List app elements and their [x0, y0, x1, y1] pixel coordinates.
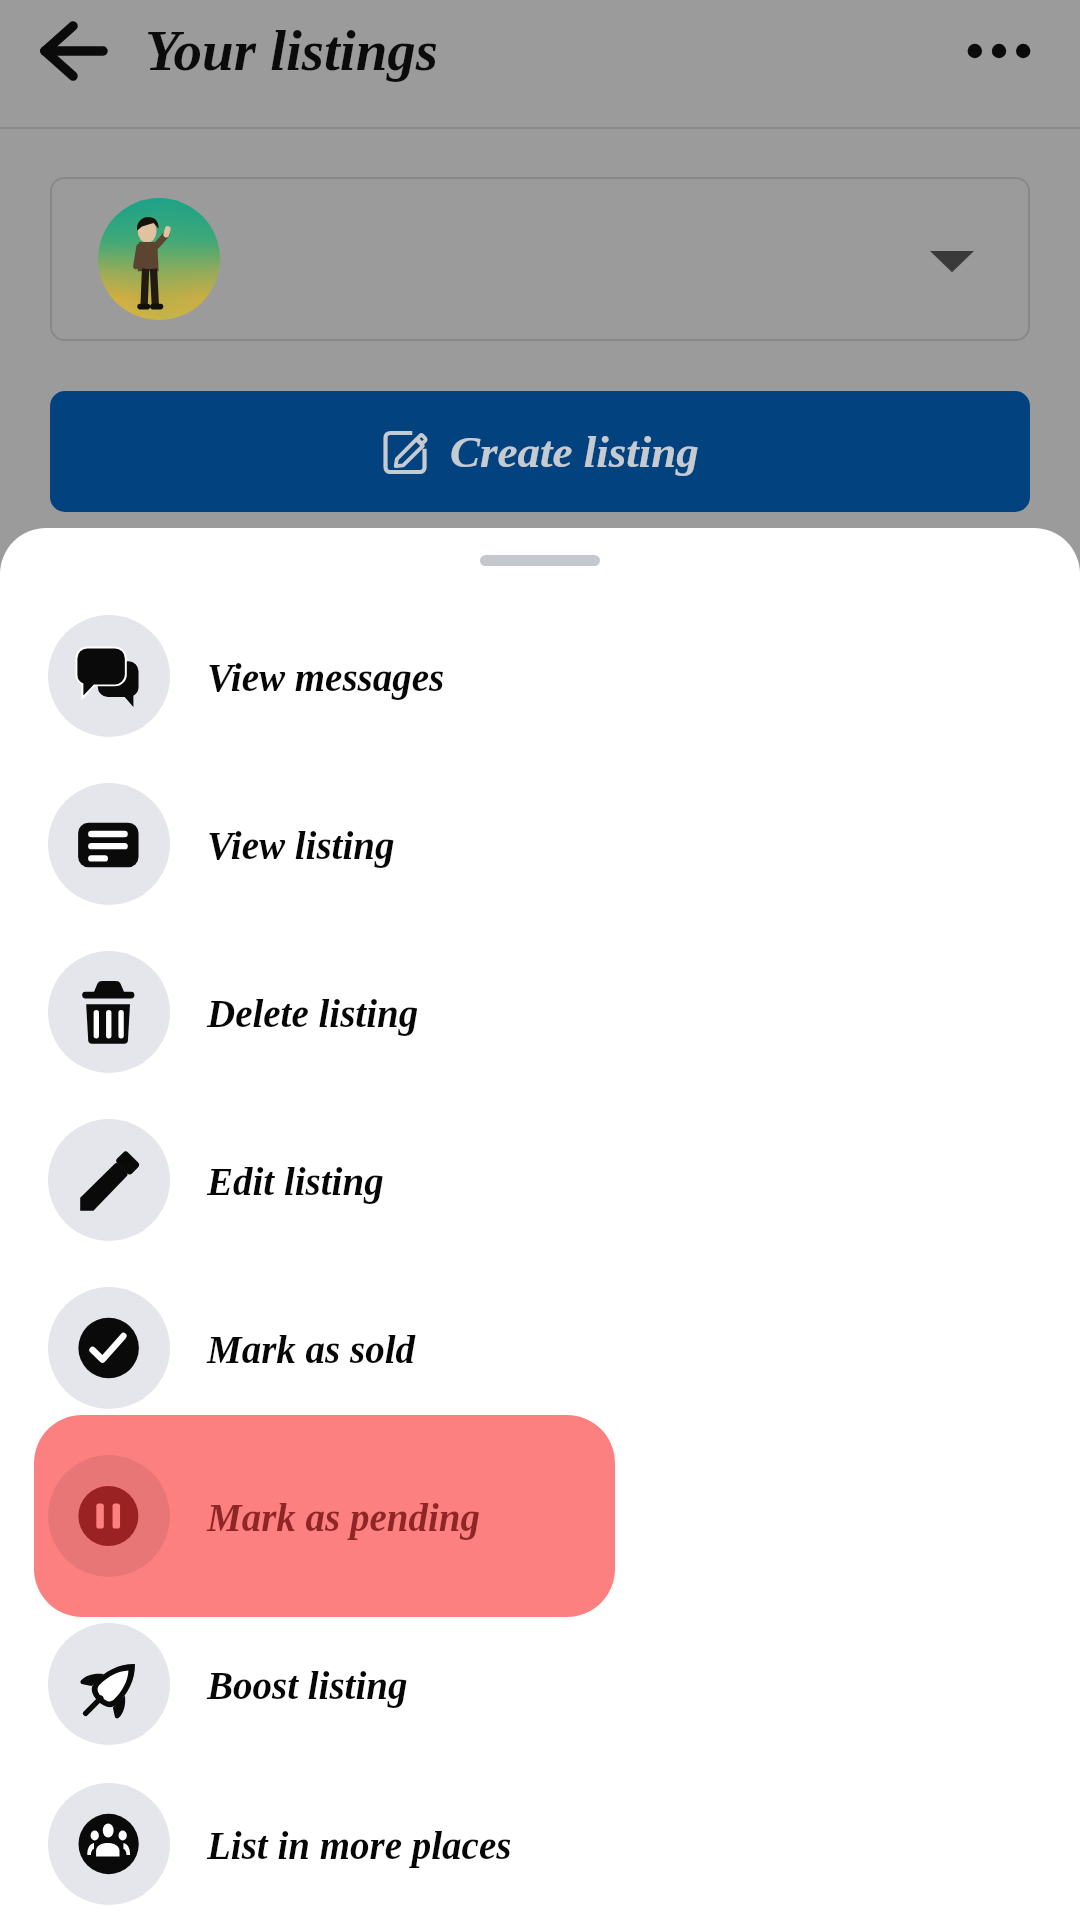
button[interactable]: View listing: [0, 760, 1080, 928]
button[interactable]: Mark as pending: [0, 1432, 1080, 1600]
staticText: Mark as pending: [207, 1496, 481, 1539]
button[interactable]: Back: [28, 7, 116, 95]
button[interactable]: List in more places: [0, 1768, 1080, 1920]
button[interactable]: Delete listing: [0, 928, 1080, 1096]
button[interactable]: Mark as sold: [0, 1264, 1080, 1432]
button[interactable]: View messages: [0, 592, 1080, 760]
button[interactable]: Create listing: [50, 391, 1030, 512]
staticText: Create listing: [450, 427, 699, 477]
button[interactable]: More options: [956, 7, 1044, 95]
staticText: Your listings: [145, 19, 439, 82]
staticText: Edit listing: [207, 1160, 384, 1203]
staticText: Delete listing: [207, 992, 419, 1035]
staticText: Boost listing: [207, 1664, 408, 1707]
staticText: View listing: [207, 824, 395, 867]
staticText: List in more places: [207, 1824, 512, 1867]
staticText: Mark as sold: [207, 1328, 416, 1371]
button[interactable]: Boost listing: [0, 1600, 1080, 1768]
button[interactable]: Edit listing: [0, 1096, 1080, 1264]
button[interactable]: [50, 177, 1030, 341]
staticText: View messages: [207, 656, 445, 699]
